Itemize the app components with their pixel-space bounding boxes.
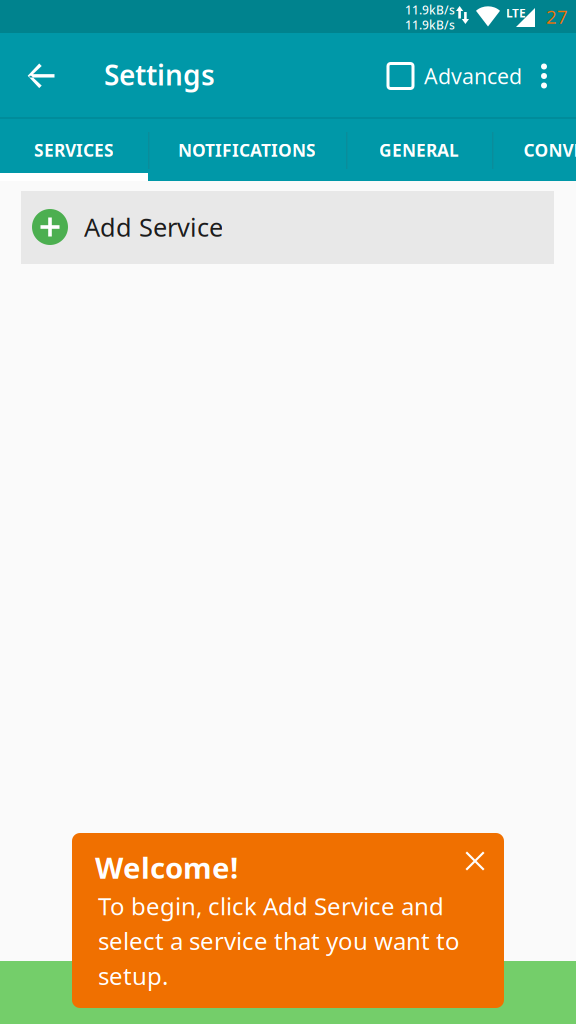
button[interactable]: SERVICES xyxy=(0,119,148,181)
staticText: Add Service xyxy=(84,210,223,244)
staticText: To begin, click Add Service and xyxy=(98,890,444,922)
staticText: Advanced xyxy=(424,62,522,90)
staticText: LTE xyxy=(506,5,526,21)
button[interactable]: NOTIFICATIONS xyxy=(148,119,346,181)
staticText: Settings xyxy=(104,56,215,93)
staticText: 11.9kB/s xyxy=(405,17,455,33)
button[interactable]: GENERAL xyxy=(346,119,492,181)
staticText: select a service that you want to xyxy=(98,925,460,957)
button[interactable]: CONVERSATIONS xyxy=(492,119,576,181)
button[interactable]: Advanced xyxy=(382,45,542,107)
staticText: setup. xyxy=(98,960,168,992)
staticText: GENERAL xyxy=(379,138,459,161)
staticText: 27 xyxy=(546,4,568,29)
button[interactable]: Back xyxy=(8,33,74,119)
staticText: Welcome! xyxy=(95,848,238,887)
button[interactable]: Close xyxy=(456,842,494,880)
button[interactable]: Add Service xyxy=(21,191,554,264)
staticText: 11.9kB/s xyxy=(405,2,455,18)
staticText: NOTIFICATIONS xyxy=(178,138,316,161)
staticText: CONVERSATIONS xyxy=(523,138,576,161)
button[interactable]: More options xyxy=(522,33,566,119)
staticText: SERVICES xyxy=(34,138,114,161)
